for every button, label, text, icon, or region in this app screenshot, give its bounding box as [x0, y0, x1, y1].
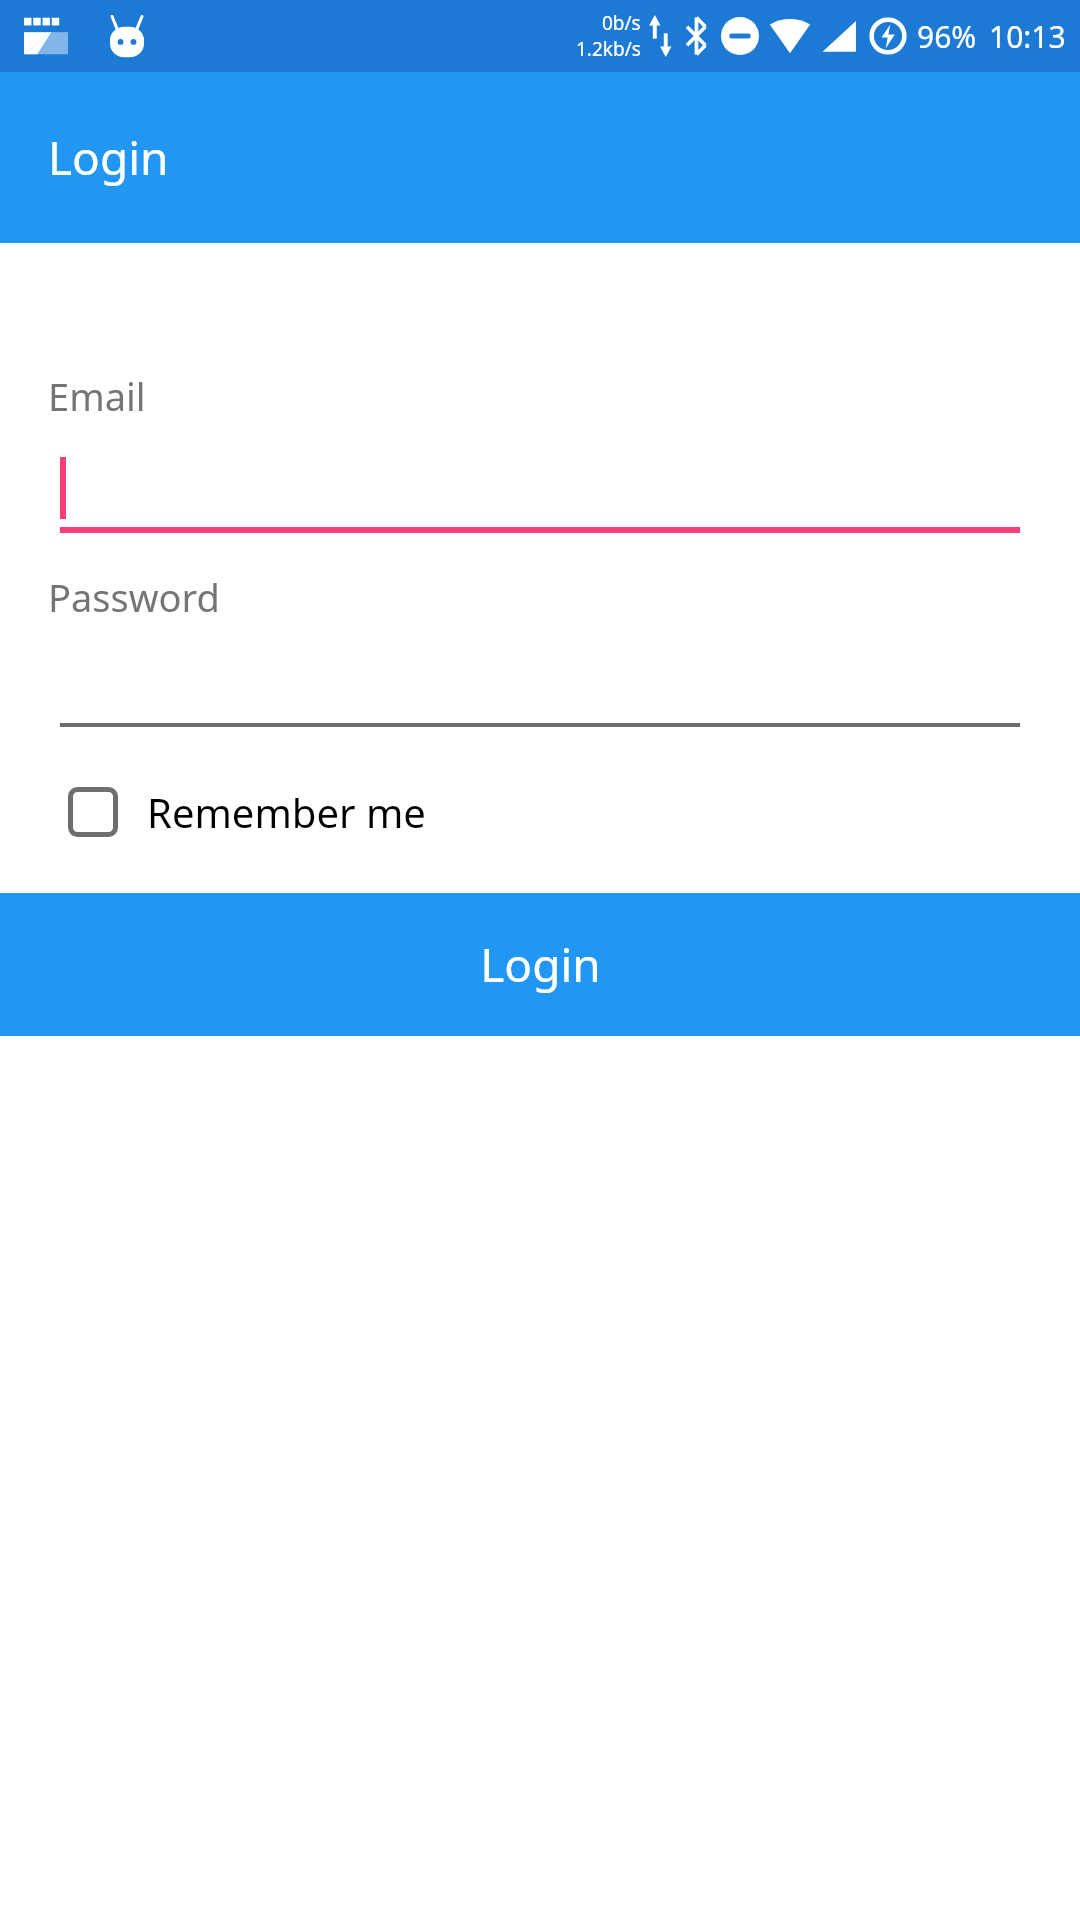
staticText: 10:13: [989, 16, 1066, 57]
button[interactable]: Remember me: [0, 785, 1080, 839]
button[interactable]: Password: [0, 571, 1080, 727]
button[interactable]: Login: [0, 893, 1080, 1036]
staticText: Email: [48, 370, 146, 422]
staticText: Remember me: [147, 785, 426, 839]
staticText: Password: [48, 571, 220, 623]
staticText: Login: [480, 933, 601, 996]
staticText: 96%: [917, 16, 977, 57]
button[interactable]: Email: [0, 370, 1080, 533]
staticText: 1.2kb/s: [576, 36, 641, 62]
staticText: 0b/s: [602, 10, 641, 36]
staticText: Login: [48, 126, 169, 189]
